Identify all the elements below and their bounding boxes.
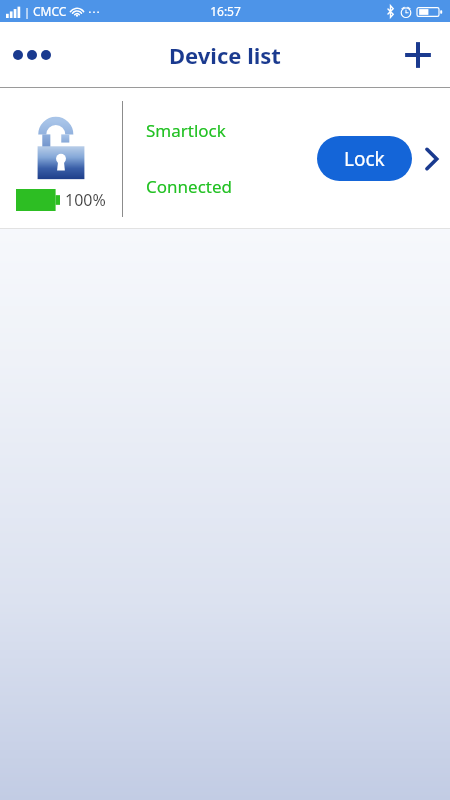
staticText: Device list <box>169 40 281 70</box>
button[interactable]: Open device details <box>412 88 450 229</box>
staticText: Connected <box>146 175 232 198</box>
staticText: Smartlock <box>146 119 226 142</box>
staticText: Lock <box>344 146 385 172</box>
button[interactable]: Menu <box>0 22 64 88</box>
staticText: CMCC <box>33 3 67 19</box>
button[interactable]: Lock <box>317 136 412 181</box>
button[interactable]: 100% <box>0 88 450 229</box>
button[interactable]: Add device <box>386 22 450 88</box>
staticText: | <box>24 4 31 19</box>
staticText: 16:57 <box>210 3 241 19</box>
staticText: 100% <box>65 189 106 211</box>
